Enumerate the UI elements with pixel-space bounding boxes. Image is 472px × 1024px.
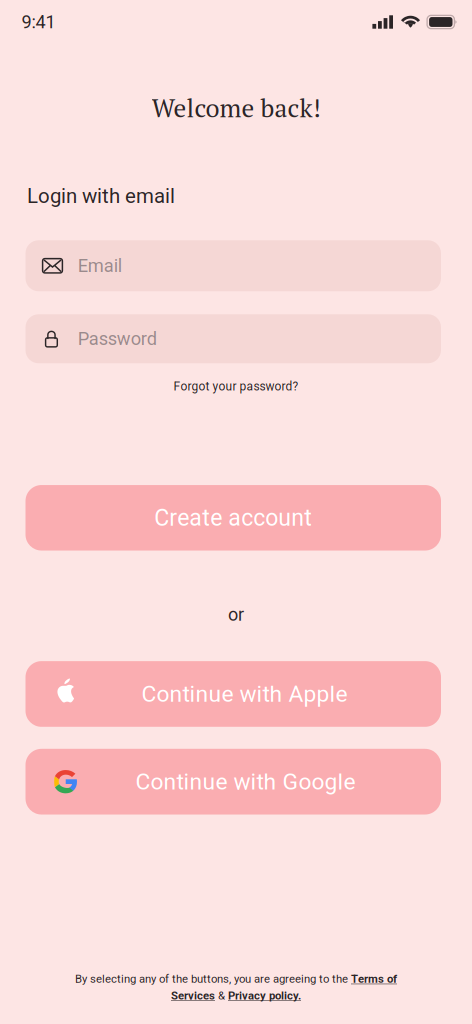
button[interactable]: Continue with Google <box>25 749 441 814</box>
button[interactable]: Email <box>25 240 441 291</box>
staticText: Login with email <box>27 184 175 208</box>
button[interactable]: Create account <box>25 485 441 550</box>
staticText: Email <box>78 255 122 276</box>
staticText: Password <box>78 328 157 349</box>
staticText: Welcome back! <box>151 91 320 125</box>
staticText: Continue with Google <box>135 768 355 795</box>
button[interactable]: Continue with Apple <box>25 661 441 727</box>
staticText: or <box>228 604 244 625</box>
button[interactable]: Forgot your password? <box>173 363 298 394</box>
staticText: Forgot your password? <box>173 379 298 394</box>
staticText: Continue with Apple <box>141 681 347 707</box>
staticText: Create account <box>154 504 312 531</box>
staticText: 9:41 <box>22 11 56 33</box>
staticText: Services & Privacy policy. <box>171 989 301 1002</box>
button[interactable]: Password <box>25 314 441 363</box>
staticText: By selecting any of the buttons, you are… <box>75 972 397 985</box>
